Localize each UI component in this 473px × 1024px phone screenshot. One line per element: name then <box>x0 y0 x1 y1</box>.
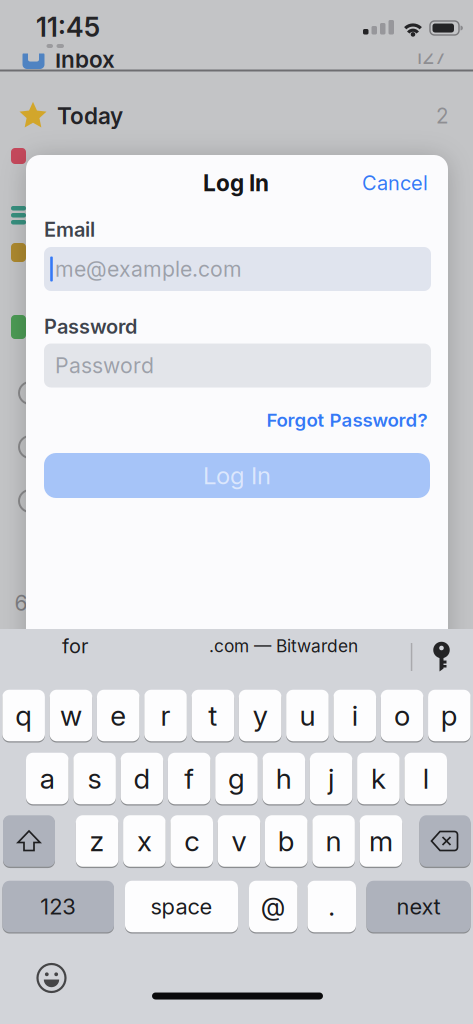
button[interactable]: for <box>35 631 115 661</box>
button[interactable]: m <box>360 815 402 867</box>
staticText: Email <box>44 217 95 242</box>
button[interactable]: y <box>239 689 281 742</box>
button[interactable]: Emoji <box>37 963 66 992</box>
button[interactable]: f <box>168 752 210 805</box>
staticText: 6 <box>14 590 27 616</box>
staticText: 11:45 <box>36 11 100 43</box>
staticText: Log In <box>203 461 271 490</box>
button[interactable]: @ <box>249 880 297 933</box>
button[interactable]: r <box>144 689 187 742</box>
staticText: o <box>394 699 410 732</box>
button[interactable]: me@example.com <box>44 247 431 291</box>
staticText: d <box>133 762 150 795</box>
staticText: Log In <box>203 169 269 197</box>
staticText: Password <box>55 353 154 378</box>
button[interactable]: h <box>262 752 305 805</box>
staticText: i <box>352 699 358 732</box>
staticText: Password <box>44 314 137 339</box>
staticText: Forgot Password? <box>266 409 427 431</box>
staticText: z <box>90 824 105 858</box>
button[interactable]: w <box>50 689 92 742</box>
staticText: . <box>328 891 335 922</box>
staticText: u <box>299 699 315 732</box>
staticText: me@example.com <box>55 256 242 282</box>
staticText: f <box>184 762 194 795</box>
button[interactable]: z <box>76 815 118 867</box>
staticText: r <box>160 699 170 732</box>
staticText: Today <box>57 102 123 130</box>
button[interactable]: space <box>125 880 238 933</box>
button[interactable]: Log In <box>44 453 430 498</box>
staticText: @ <box>261 891 286 922</box>
staticText: Inbox <box>55 46 115 73</box>
staticText: b <box>278 824 295 858</box>
staticText: .com — Bitwarden <box>209 635 358 656</box>
button[interactable]: o <box>381 689 423 742</box>
button[interactable]: Forgot Password? <box>177 409 427 431</box>
button[interactable]: Next <box>366 880 470 933</box>
staticText: p <box>441 699 458 732</box>
button[interactable]: p <box>428 689 471 742</box>
staticText: v <box>231 824 246 858</box>
staticText: w <box>60 699 82 732</box>
staticText: 123 <box>40 893 76 920</box>
button[interactable]: Password <box>44 343 431 387</box>
staticText: t <box>208 699 217 732</box>
button[interactable]: u <box>286 689 329 742</box>
button[interactable]: Cancel <box>308 171 428 195</box>
button[interactable]: g <box>215 752 258 805</box>
button[interactable]: t <box>191 689 234 742</box>
button[interactable]: x <box>123 815 166 867</box>
staticText: Cancel <box>362 171 428 195</box>
staticText: h <box>276 762 292 795</box>
staticText: c <box>184 824 199 858</box>
staticText: next <box>396 893 440 920</box>
staticText: l <box>423 762 429 795</box>
staticText: m <box>369 824 393 858</box>
button[interactable]: v <box>218 815 260 867</box>
staticText: x <box>137 824 152 858</box>
staticText: y <box>253 699 268 732</box>
staticText: 127 <box>414 44 447 69</box>
button[interactable]: q <box>2 689 45 742</box>
staticText: g <box>228 762 245 795</box>
staticText: k <box>371 762 386 795</box>
staticText: s <box>88 762 102 795</box>
button[interactable]: s <box>73 752 116 805</box>
staticText: a <box>40 762 55 795</box>
button[interactable]: b <box>265 815 308 867</box>
staticText: n <box>326 824 342 858</box>
button[interactable]: Delete <box>419 815 470 867</box>
button[interactable]: .com — Bitwarden <box>193 631 373 661</box>
staticText: j <box>328 762 334 795</box>
button[interactable]: c <box>170 815 213 867</box>
button[interactable]: d <box>121 752 163 805</box>
button[interactable]: j <box>310 752 352 805</box>
button[interactable]: e <box>97 689 139 742</box>
staticText: q <box>15 699 32 732</box>
staticText: space <box>150 893 212 920</box>
button[interactable]: i <box>333 689 376 742</box>
button[interactable]: Numbers <box>2 880 114 933</box>
button[interactable]: n <box>312 815 355 867</box>
button[interactable]: . <box>307 880 356 933</box>
button[interactable]: l <box>404 752 447 805</box>
button[interactable]: a <box>26 752 69 805</box>
button[interactable]: Shift <box>3 815 55 867</box>
staticText: 2 <box>436 103 449 128</box>
button[interactable]: Passwords <box>430 641 453 672</box>
staticText: for <box>62 634 88 658</box>
staticText: e <box>110 699 126 732</box>
button[interactable]: k <box>357 752 400 805</box>
